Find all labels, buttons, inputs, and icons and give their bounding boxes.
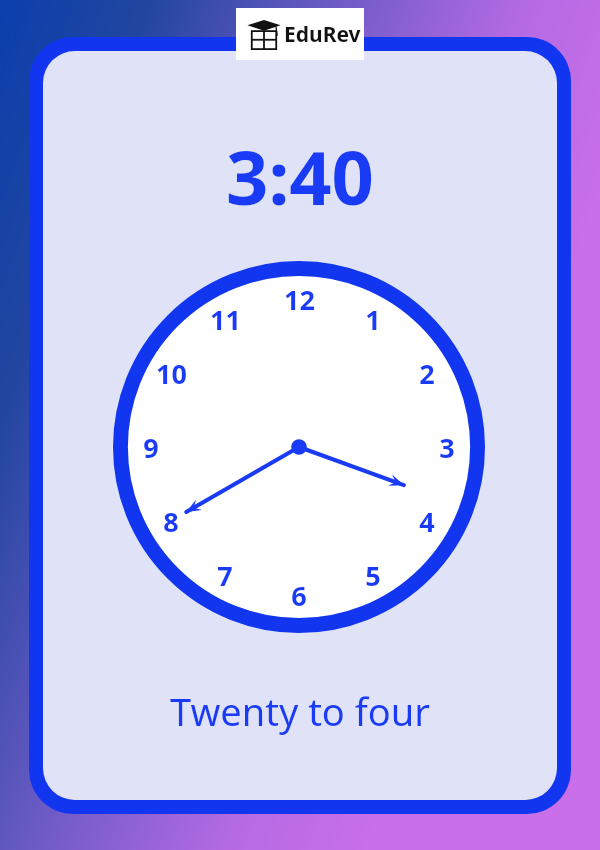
button[interactable]: EduRev logo (236, 8, 364, 60)
staticText: 4 (419, 503, 435, 540)
staticText: Twenty to four (170, 685, 430, 737)
staticText: 3 (439, 429, 455, 466)
staticText: 8 (163, 503, 179, 540)
staticText: EduRev (284, 20, 361, 49)
staticText: 11 (210, 301, 241, 338)
staticText: 7 (217, 557, 233, 594)
button[interactable] (29, 37, 571, 814)
staticText: 1 (365, 301, 381, 338)
staticText: 5 (365, 557, 381, 594)
staticText: 9 (143, 429, 159, 466)
staticText: 2 (419, 355, 435, 392)
staticText: 3:40 (226, 126, 374, 210)
staticText: 6 (291, 577, 307, 614)
staticText: 10 (156, 355, 187, 392)
staticText: 12 (284, 281, 315, 318)
other: Analog clock showing 3:40 (113, 261, 485, 633)
